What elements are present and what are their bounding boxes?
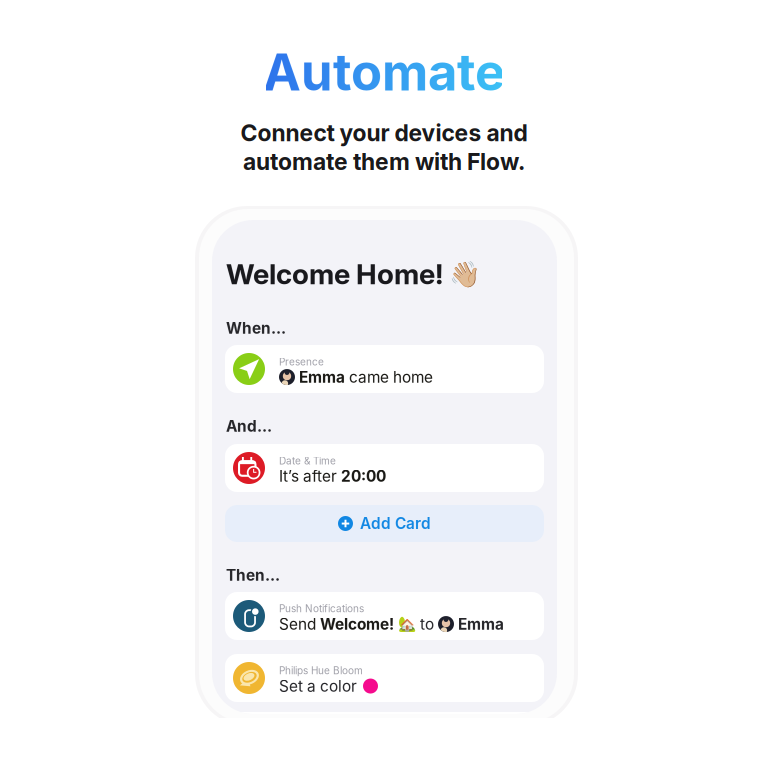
button[interactable]: Presence (225, 345, 544, 393)
staticText: automate them with Flow. (243, 148, 525, 175)
staticText: 👋🏼 (449, 259, 481, 289)
staticText: Date & Time (279, 455, 336, 467)
staticText: Send Welcome! (279, 615, 394, 633)
button[interactable]: Push Notifications (225, 592, 544, 640)
staticText: When... (226, 319, 286, 338)
staticText: to (420, 615, 434, 633)
staticText: 🏡 (398, 615, 416, 633)
staticText: Add Card (360, 514, 431, 533)
staticText: Philips Hue Bloom (279, 665, 363, 677)
button[interactable]: Philips Hue Bloom (225, 654, 544, 702)
staticText: Connect your devices and (240, 119, 527, 147)
staticText: Presence (279, 356, 324, 368)
staticText: Set a color (279, 677, 357, 695)
staticText: It’s after 20:00 (279, 467, 386, 485)
staticText: Emma (458, 615, 504, 633)
button[interactable]: Date & Time (225, 444, 544, 492)
staticText: And... (226, 417, 272, 436)
staticText: Push Notifications (279, 603, 364, 615)
staticText: Then... (226, 566, 280, 585)
staticText: Emma came home (299, 368, 433, 386)
button[interactable]: Add Card (225, 505, 544, 542)
staticText: Welcome Home! (226, 257, 443, 291)
